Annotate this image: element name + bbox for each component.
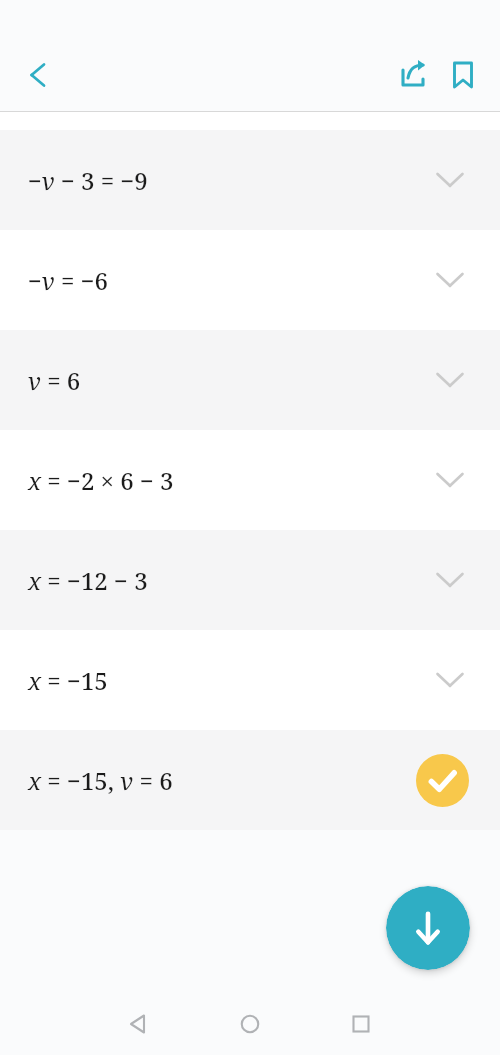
- staticText: x = −2 × 6 − 3: [28, 464, 174, 497]
- button[interactable]: Expand step: [424, 654, 476, 706]
- button[interactable]: Recent apps: [336, 999, 386, 1049]
- staticText: −v − 3 = −9: [28, 164, 148, 197]
- button[interactable]: x = −12 − 3: [0, 530, 500, 630]
- button[interactable]: Scroll to bottom: [386, 886, 470, 970]
- button[interactable]: x = −15: [0, 630, 500, 730]
- staticText: x = −15: [28, 664, 108, 697]
- button[interactable]: Expand step: [424, 154, 476, 206]
- button[interactable]: Expand step: [424, 254, 476, 306]
- button[interactable]: Expand step: [424, 454, 476, 506]
- staticText: x = −12 − 3: [28, 564, 148, 597]
- button[interactable]: Expand step: [424, 354, 476, 406]
- staticText: x = −15, v = 6: [28, 764, 173, 797]
- button[interactable]: Home: [225, 999, 275, 1049]
- button[interactable]: Expand step: [424, 554, 476, 606]
- button[interactable]: Bookmark: [438, 50, 488, 100]
- button[interactable]: Back: [10, 50, 60, 100]
- button[interactable]: −v − 3 = −9: [0, 130, 500, 230]
- button[interactable]: −v = −6: [0, 230, 500, 330]
- button[interactable]: Share: [388, 50, 438, 100]
- staticText: −v = −6: [28, 264, 109, 297]
- button[interactable]: v = 6: [0, 330, 500, 430]
- staticText: v = 6: [28, 364, 81, 397]
- button[interactable]: x = −15, v = 6: [0, 730, 500, 830]
- button[interactable]: x = −2 × 6 − 3: [0, 430, 500, 530]
- button[interactable]: Solved: [416, 754, 469, 807]
- button[interactable]: Back: [113, 999, 163, 1049]
